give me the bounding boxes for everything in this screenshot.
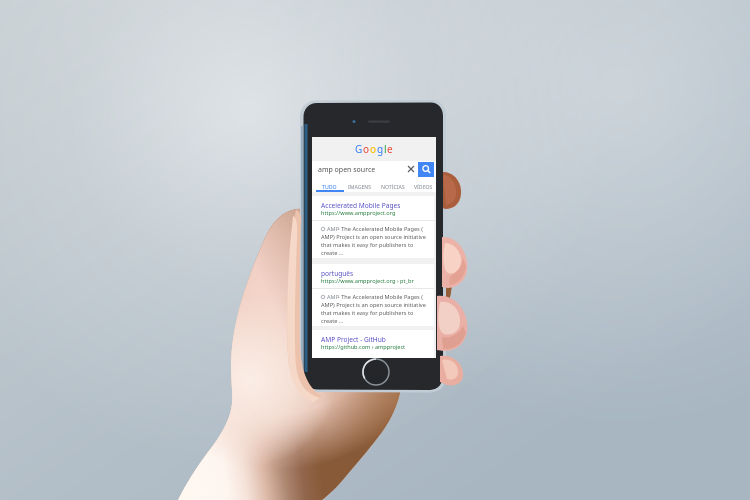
staticText: AMP xyxy=(327,225,340,233)
staticText: o xyxy=(370,142,377,156)
button[interactable]: TUDO xyxy=(319,180,340,192)
button[interactable]: NOTÍCIAS xyxy=(378,180,408,192)
button[interactable]: AMP Project - GitHub xyxy=(312,330,434,358)
staticText: IMAGENS xyxy=(348,183,372,190)
staticText: https://github.com › ampproject xyxy=(321,343,406,351)
staticText: AMP) Project is an open source initiativ… xyxy=(321,233,426,241)
button[interactable]: Accelerated Mobile Pages xyxy=(312,196,434,221)
staticText: G xyxy=(355,142,363,156)
button[interactable]: IMAGENS xyxy=(345,180,375,192)
staticText: Accelerated Mobile Pages xyxy=(321,201,401,210)
staticText: g xyxy=(377,142,384,156)
staticText: that makes it easy for publishers to xyxy=(321,241,414,249)
button[interactable]: Clear query xyxy=(403,161,418,177)
staticText: - The Accelerated Mobile Pages ( xyxy=(338,225,423,233)
staticText: - The Accelerated Mobile Pages ( xyxy=(338,293,423,301)
staticText: amp open source xyxy=(318,165,376,175)
staticText: AMP) Project is an open source initiativ… xyxy=(321,301,426,309)
staticText: o xyxy=(363,142,370,156)
staticText: AMP xyxy=(327,293,340,301)
button[interactable]: AMP xyxy=(312,289,434,326)
staticText: https://www.ampproject.org › pt_br xyxy=(321,277,414,285)
staticText: AMP Project - GitHub xyxy=(321,335,386,344)
staticText: that makes it easy for publishers to xyxy=(321,309,414,317)
button[interactable]: Search xyxy=(418,162,434,177)
staticText: l xyxy=(384,142,387,156)
button[interactable]: VÍDEOS xyxy=(411,180,436,192)
staticText: português xyxy=(321,269,354,278)
staticText: e xyxy=(387,142,393,156)
staticText: TUDO xyxy=(322,183,337,190)
button[interactable]: amp open source xyxy=(312,161,436,177)
button[interactable]: AMP xyxy=(312,221,434,258)
staticText: NOTÍCIAS xyxy=(381,183,405,190)
button[interactable]: português xyxy=(312,264,434,289)
staticText: create ... xyxy=(321,249,344,257)
staticText: VÍDEOS xyxy=(414,183,433,190)
staticText: https://www.ampproject.org xyxy=(321,209,396,217)
staticText: create ... xyxy=(321,317,344,325)
